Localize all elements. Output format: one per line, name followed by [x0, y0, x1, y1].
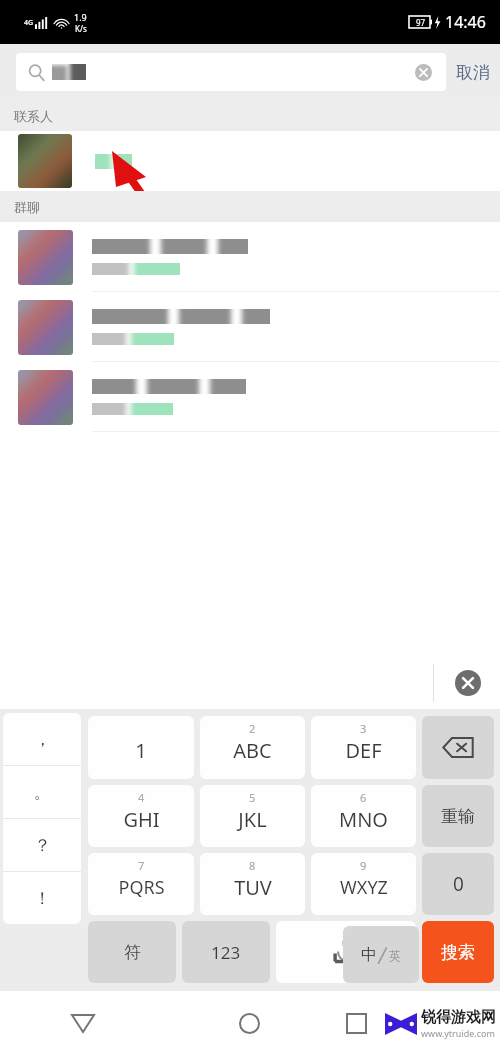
staticText: 联系人 [14, 108, 53, 124]
staticText: 取消 [456, 62, 490, 83]
staticText: 符 [124, 942, 141, 963]
button[interactable]: 搜索 [422, 921, 494, 983]
staticText: WXYZ [340, 875, 388, 900]
button[interactable]: 0 [422, 853, 494, 915]
button[interactable]: ， [3, 713, 81, 765]
button[interactable] [0, 222, 500, 292]
button[interactable]: 空格 语音输入 [276, 921, 416, 983]
button[interactable]: 9 [311, 853, 416, 915]
staticText: 9 [360, 858, 367, 873]
staticText: 2 [249, 721, 256, 736]
button[interactable]: 6 [311, 785, 416, 847]
staticText: TUV [234, 874, 272, 901]
button[interactable]: 取消 [456, 62, 490, 83]
button[interactable]: 退格 [422, 716, 494, 779]
staticText: DEF [345, 737, 382, 764]
button[interactable]: 7 [88, 853, 194, 915]
staticText: MNO [339, 806, 388, 833]
staticText: 97 [416, 17, 426, 28]
button[interactable]: 重输 [422, 785, 494, 847]
staticText: 1 [135, 737, 147, 764]
staticText: 7 [138, 858, 145, 873]
staticText: 4G [24, 18, 34, 28]
staticText: PQRS [118, 875, 165, 900]
staticText: 6 [360, 790, 367, 805]
button[interactable]: 主屏幕 [166, 990, 333, 1056]
staticText: 14:46 [445, 11, 486, 33]
button[interactable]: ？ [3, 819, 81, 871]
staticText: 0 [453, 871, 464, 897]
staticText: 英 [389, 948, 401, 963]
button[interactable]: 1 [88, 716, 194, 779]
staticText: 搜索 [441, 942, 475, 963]
staticText: ， [34, 729, 51, 750]
button[interactable]: 5 [200, 785, 305, 847]
staticText: GHI [123, 806, 160, 833]
button[interactable]: 清除 [16, 53, 446, 91]
staticText: 重输 [441, 806, 475, 827]
button[interactable]: 收起键盘 [446, 661, 490, 705]
staticText: 1.9 [74, 11, 87, 23]
staticText: 123 [211, 941, 241, 964]
staticText: 。 [34, 782, 51, 803]
staticText: K/s [75, 23, 87, 34]
staticText: 3 [360, 721, 367, 736]
button[interactable]: 3 [311, 716, 416, 779]
button[interactable]: 中 [343, 926, 419, 983]
staticText: 中 [361, 945, 377, 965]
staticText: JKL [238, 806, 267, 833]
button[interactable] [0, 292, 500, 362]
staticText: www.ytruide.com [421, 1027, 495, 1039]
button[interactable] [0, 362, 500, 432]
button[interactable]: 最近任务 [333, 990, 500, 1056]
staticText: 4 [138, 790, 145, 805]
staticText: 8 [249, 858, 256, 873]
button[interactable]: 。 [3, 766, 81, 818]
staticText: ？ [34, 835, 51, 856]
button[interactable]: 8 [200, 853, 305, 915]
button[interactable]: 2 [200, 716, 305, 779]
button[interactable]: 123 [182, 921, 270, 983]
button[interactable]: ！ [3, 872, 81, 924]
button[interactable]: 清除 [412, 61, 434, 83]
button[interactable] [0, 131, 500, 191]
staticText: 群聊 [14, 199, 40, 215]
staticText: 5 [249, 790, 256, 805]
staticText: ！ [34, 888, 51, 909]
staticText: ABC [233, 737, 272, 764]
button[interactable]: 返回 [0, 990, 166, 1056]
button[interactable]: 4 [88, 785, 194, 847]
staticText: 锐得游戏网 [421, 1008, 496, 1027]
button[interactable]: 符 [88, 921, 176, 983]
